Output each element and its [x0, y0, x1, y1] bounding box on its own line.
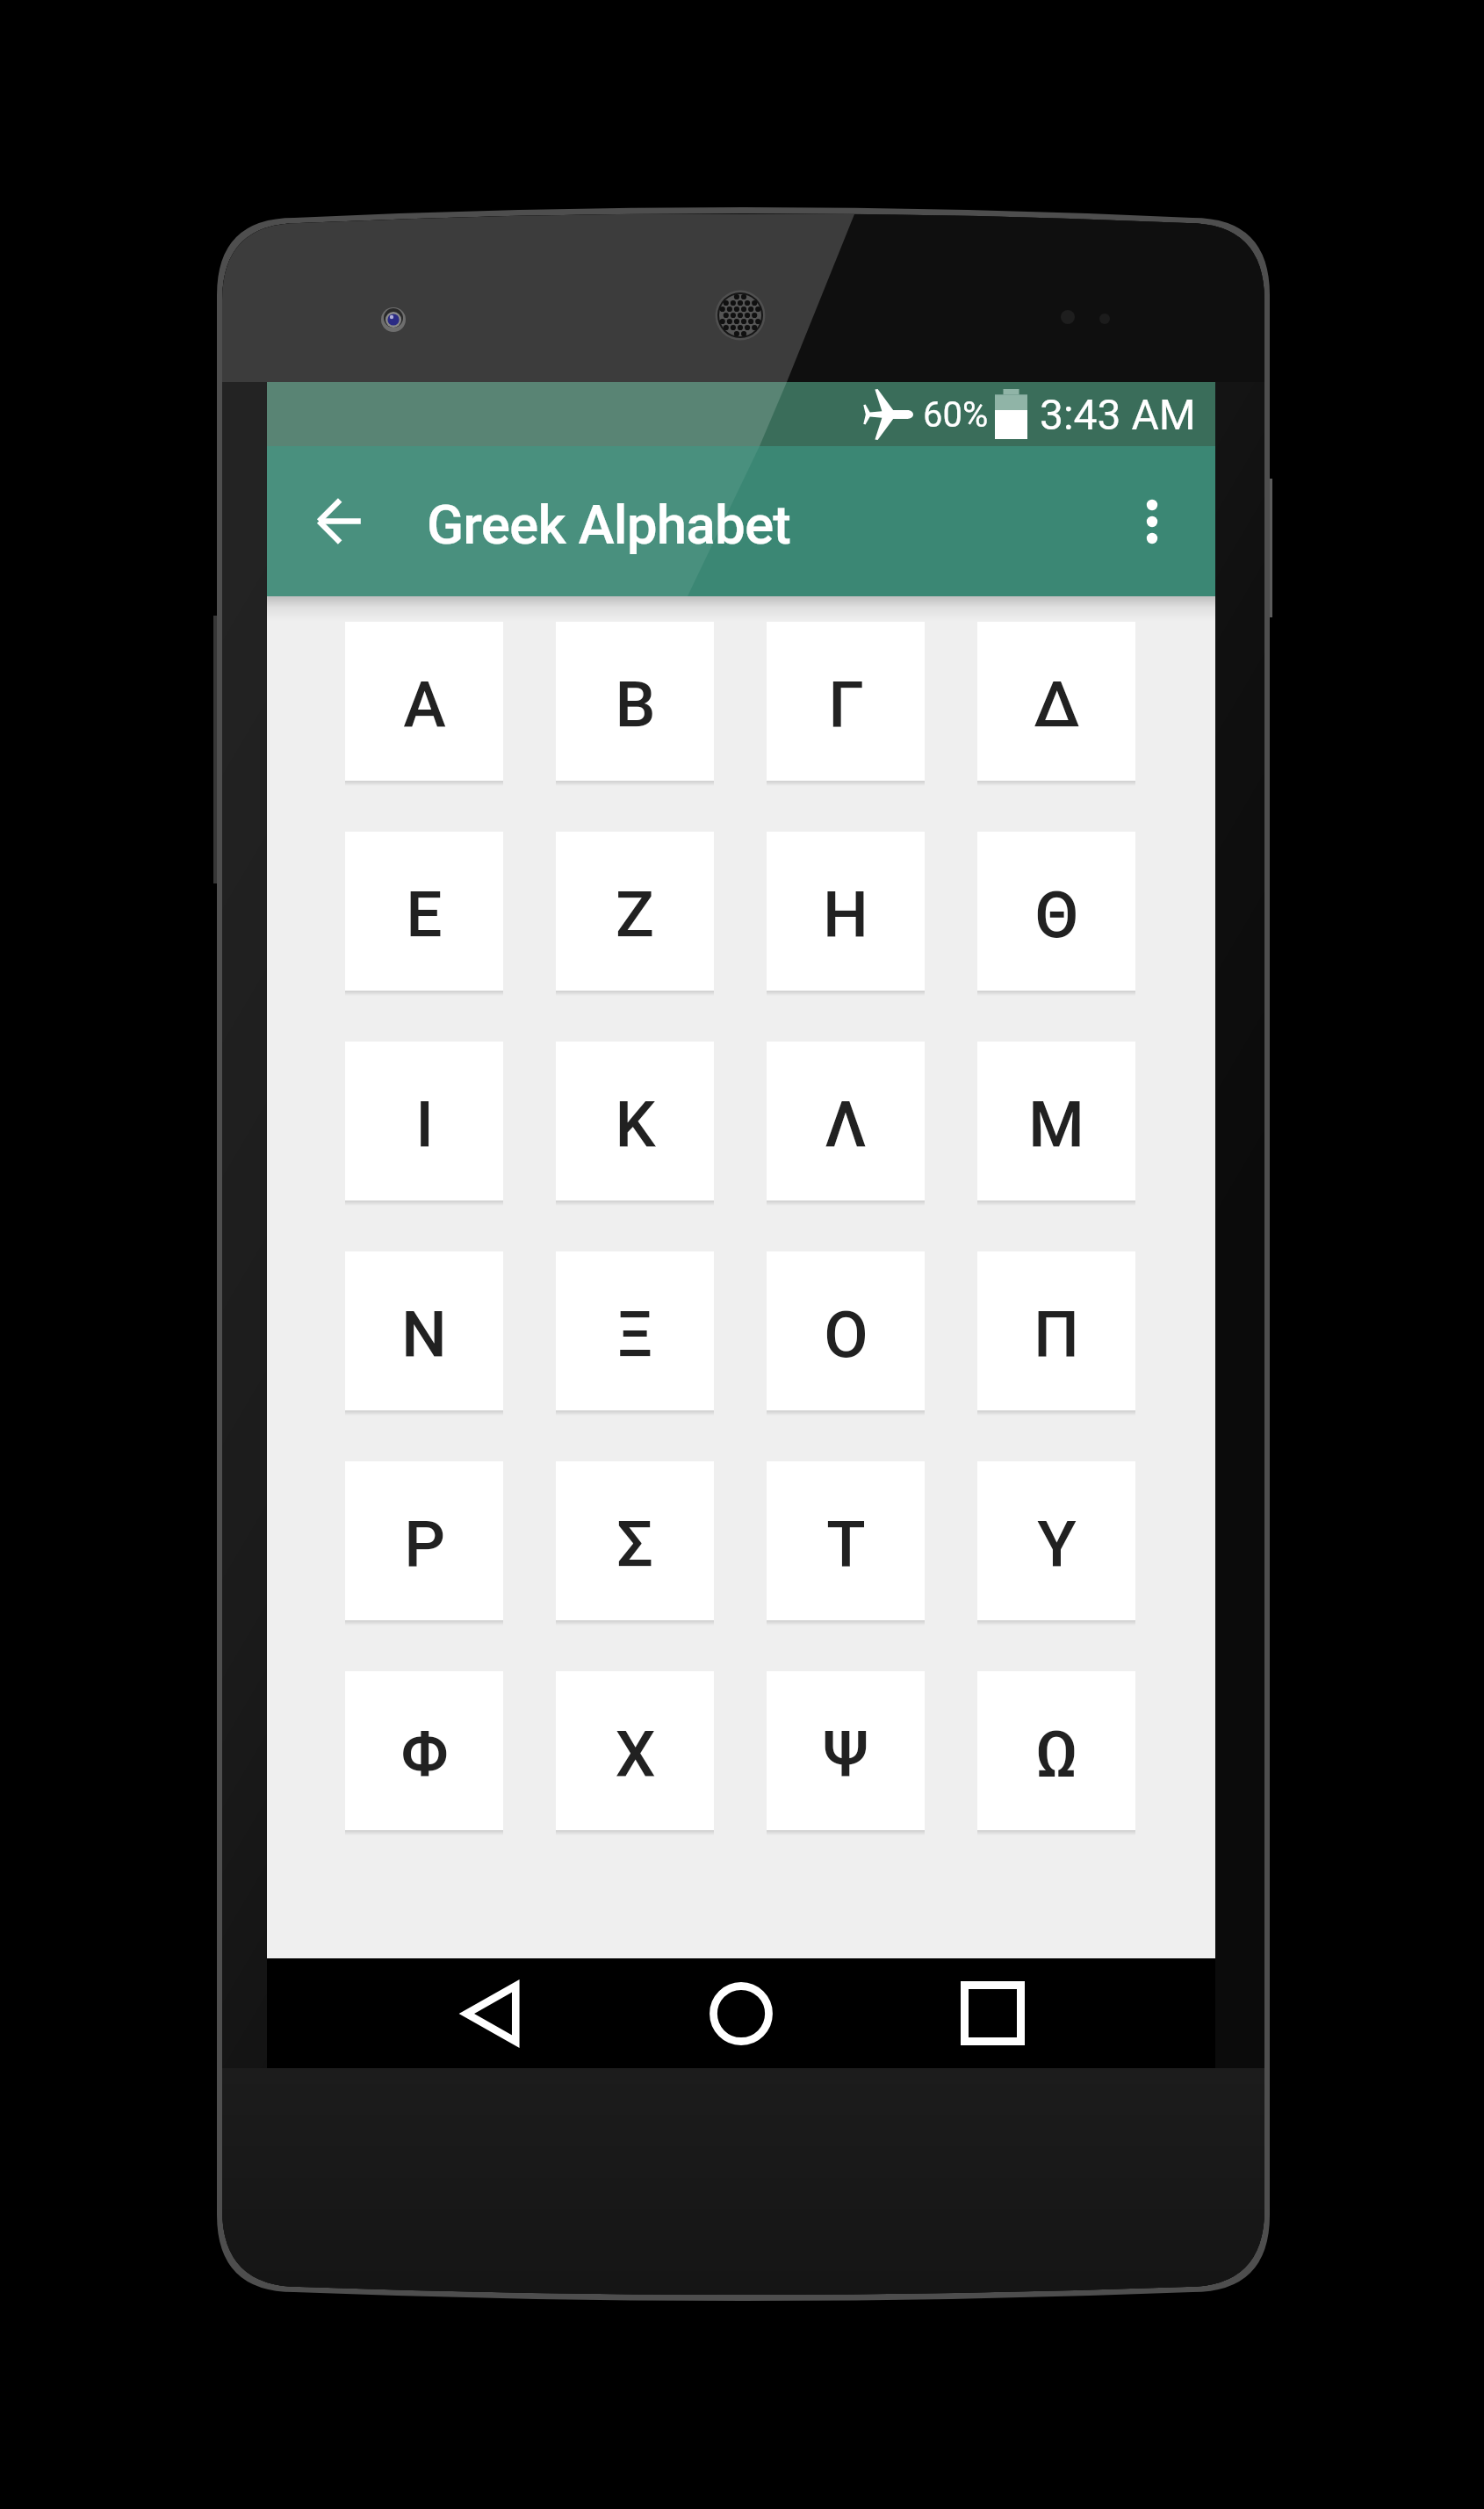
staticText: Β	[615, 667, 656, 743]
button[interactable]: Φ	[345, 1671, 503, 1835]
staticText: 60%	[923, 394, 989, 436]
button[interactable]: Η	[767, 832, 925, 996]
staticText: Greek Alphabet	[427, 493, 791, 557]
button[interactable]: Π	[977, 1251, 1135, 1416]
staticText: Θ	[1034, 877, 1079, 953]
button[interactable]: Back	[412, 1958, 570, 2068]
button[interactable]: Ζ	[556, 832, 714, 996]
staticText: Π	[1034, 1297, 1079, 1373]
staticText: Μ	[1028, 1087, 1084, 1163]
button[interactable]: Ρ	[345, 1461, 503, 1626]
staticText: Λ	[825, 1087, 867, 1163]
button[interactable]: Ν	[345, 1251, 503, 1416]
button[interactable]: Δ	[977, 622, 1135, 786]
button[interactable]: Recent apps	[913, 1958, 1071, 2068]
staticText: Ν	[401, 1297, 447, 1373]
staticText: Ζ	[616, 877, 654, 953]
button[interactable]: Home	[662, 1958, 820, 2068]
staticText: Ξ	[616, 1297, 653, 1373]
button[interactable]: Λ	[767, 1042, 925, 1206]
staticText: Δ	[1034, 667, 1080, 743]
button[interactable]: Β	[556, 622, 714, 786]
button[interactable]: Ψ	[767, 1671, 925, 1835]
button[interactable]: Α	[345, 622, 503, 786]
staticText: Γ	[828, 667, 864, 743]
staticText: Η	[823, 877, 868, 953]
button[interactable]: Navigate up	[290, 446, 390, 596]
button[interactable]: Ο	[767, 1251, 925, 1416]
button[interactable]: Μ	[977, 1042, 1135, 1206]
button[interactable]: Κ	[556, 1042, 714, 1206]
button[interactable]: Θ	[977, 832, 1135, 996]
button[interactable]: Ι	[345, 1042, 503, 1206]
button[interactable]: Γ	[767, 622, 925, 786]
button[interactable]: More options	[1105, 446, 1199, 596]
button[interactable]: Χ	[556, 1671, 714, 1835]
staticText: Ο	[824, 1297, 868, 1373]
staticText: Ε	[406, 877, 443, 953]
button[interactable]: Τ	[767, 1461, 925, 1626]
staticText: Υ	[1037, 1507, 1077, 1583]
button[interactable]: Ξ	[556, 1251, 714, 1416]
staticText: Ψ	[823, 1717, 868, 1792]
button[interactable]: Ε	[345, 832, 503, 996]
staticText: Ρ	[404, 1507, 445, 1583]
staticText: Κ	[615, 1087, 656, 1163]
button[interactable]: Υ	[977, 1461, 1135, 1626]
button[interactable]: Σ	[556, 1461, 714, 1626]
button[interactable]: Ω	[977, 1671, 1135, 1835]
staticText: Ι	[415, 1087, 434, 1163]
staticText: Ω	[1035, 1717, 1078, 1792]
staticText: Τ	[826, 1507, 866, 1583]
staticText: Χ	[615, 1717, 656, 1792]
staticText: Φ	[400, 1717, 449, 1792]
staticText: Α	[403, 667, 446, 743]
staticText: 3:43 AM	[1040, 390, 1196, 439]
staticText: Σ	[616, 1507, 653, 1583]
